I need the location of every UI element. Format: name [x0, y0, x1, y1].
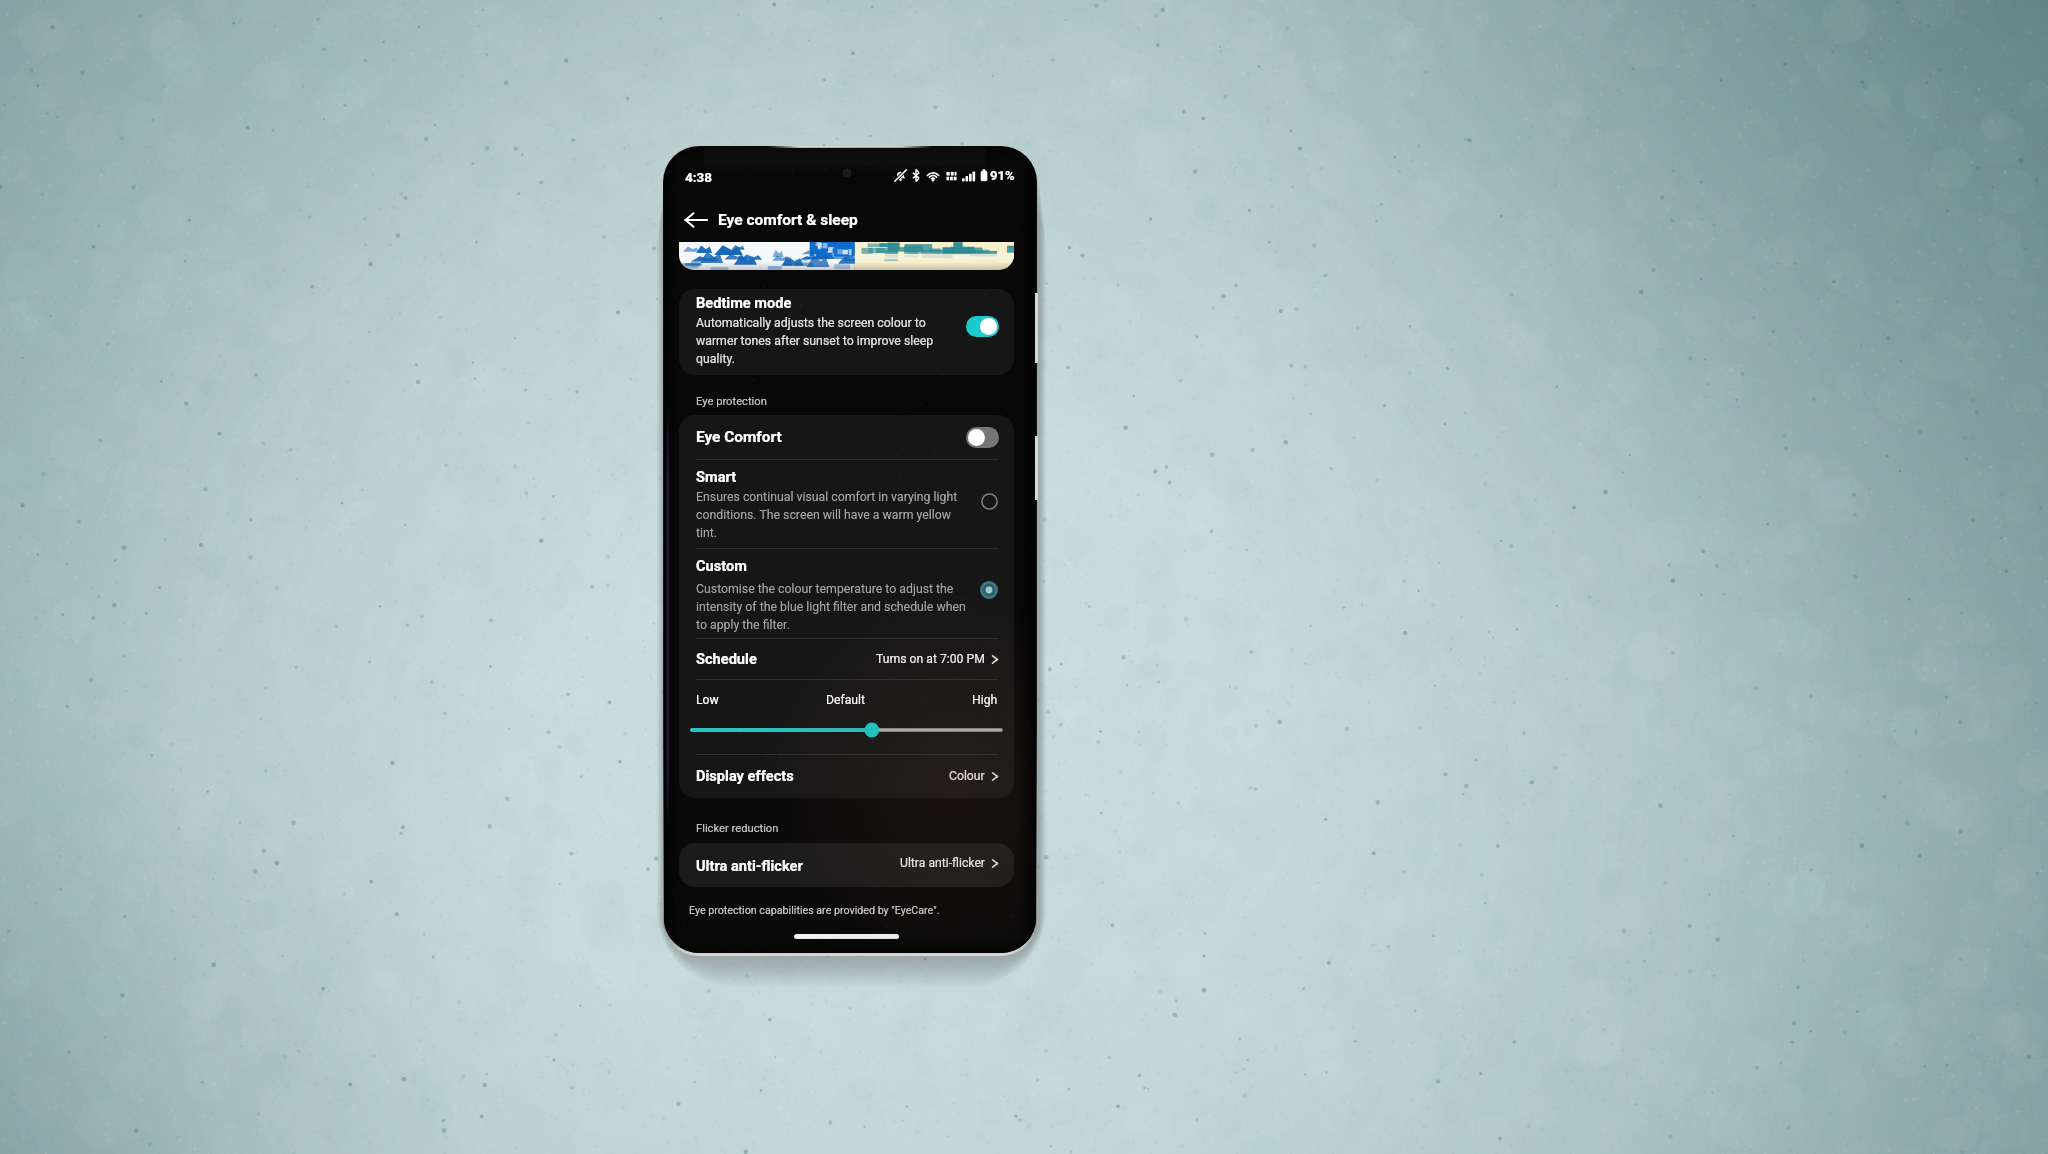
staticText: Flicker reduction	[696, 822, 779, 835]
button[interactable]: Switch off	[966, 427, 999, 448]
staticText: Custom	[696, 557, 747, 574]
button[interactable]: Smart	[679, 460, 1014, 549]
button[interactable]: Wallpaper preview	[679, 242, 1014, 270]
button[interactable]: Custom	[679, 549, 1014, 639]
staticText: Colour	[949, 769, 985, 783]
staticText: Customise the colour temperature to adju…	[696, 582, 966, 632]
staticText: Eye comfort & sleep	[718, 211, 858, 229]
staticText: Eye Comfort	[696, 428, 782, 446]
button[interactable]: Ultra anti-flicker	[679, 843, 1014, 887]
staticText: Display effects	[696, 767, 794, 784]
button[interactable]: Schedule	[679, 639, 1014, 680]
button[interactable]: Back	[676, 200, 716, 240]
staticText: Schedule	[696, 650, 757, 667]
staticText: Low	[696, 693, 719, 707]
staticText: 91%	[990, 168, 1015, 183]
staticText: Default	[826, 693, 865, 707]
staticText: Ultra anti-flicker	[900, 856, 985, 870]
staticText: Turns on at 7:00 PM	[876, 652, 985, 666]
button[interactable]: Bedtime mode	[679, 289, 1014, 375]
staticText: Eye protection	[696, 395, 767, 408]
staticText: 4:38	[685, 169, 713, 185]
button[interactable]: Display effects	[679, 755, 1014, 798]
staticText: Ultra anti-flicker	[696, 857, 803, 874]
staticText: Ensures continual visual comfort in vary…	[696, 490, 958, 540]
button[interactable]: Eye Comfort	[679, 415, 1014, 460]
staticText: Eye protection capabilities are provided…	[689, 904, 940, 917]
staticText: High	[972, 693, 998, 707]
button[interactable]: Switch on	[966, 316, 999, 337]
staticText: Bedtime mode	[696, 294, 792, 311]
button[interactable]: Colour temperature slider	[692, 721, 1001, 739]
staticText: Automatically adjusts the screen colour …	[696, 316, 934, 366]
staticText: Smart	[696, 468, 737, 485]
